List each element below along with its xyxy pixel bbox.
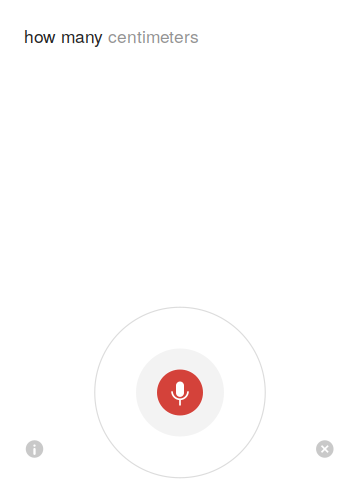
button[interactable]: Close — [303, 427, 347, 471]
button[interactable]: Start listening — [94, 306, 266, 478]
staticText: centimeters — [108, 23, 199, 48]
button[interactable]: Info — [12, 427, 56, 471]
staticText: how many — [24, 23, 108, 48]
